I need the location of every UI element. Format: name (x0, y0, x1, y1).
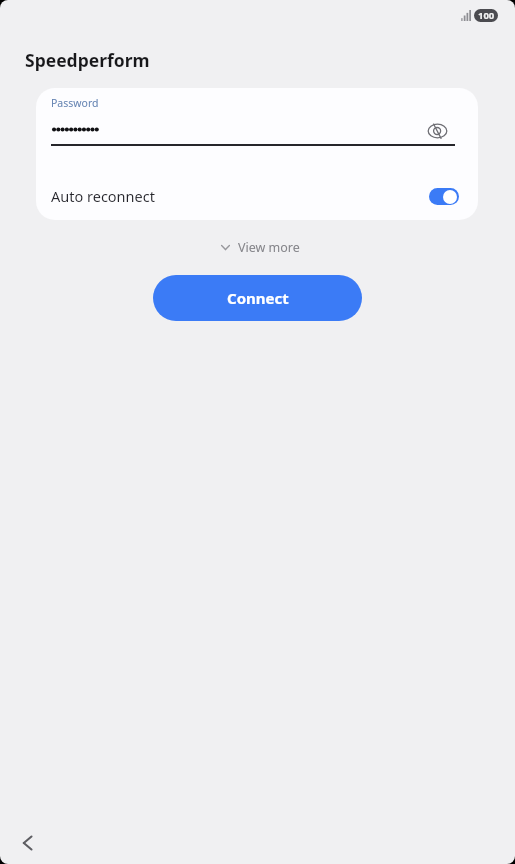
staticText: Password (51, 96, 99, 110)
button[interactable]: Show password (424, 118, 450, 144)
staticText: View more (238, 239, 300, 255)
staticText: Auto reconnect (51, 186, 429, 206)
staticText: Speedperform (25, 48, 150, 72)
button[interactable]: Back (11, 826, 44, 859)
staticText: Connect (227, 288, 289, 308)
button[interactable]: Auto reconnect (51, 179, 459, 213)
button[interactable]: Connect (153, 275, 362, 321)
button[interactable]: View more (215, 234, 306, 260)
staticText: 100 (478, 9, 495, 22)
